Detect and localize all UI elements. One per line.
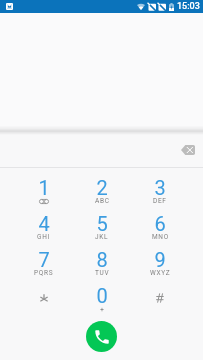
staticText: MNO bbox=[152, 233, 169, 241]
staticText: PQRS bbox=[34, 269, 54, 277]
staticText: + bbox=[100, 306, 104, 314]
staticText: ABC bbox=[95, 197, 110, 205]
staticText: 1 bbox=[38, 176, 50, 199]
button[interactable]: 8 bbox=[73, 240, 131, 276]
staticText: 3 bbox=[154, 176, 166, 199]
button[interactable]: 5 bbox=[73, 204, 131, 240]
staticText: 0 bbox=[96, 284, 108, 307]
button[interactable]: 9 bbox=[131, 240, 189, 276]
staticText: WXYZ bbox=[150, 269, 171, 277]
staticText: GHI bbox=[37, 233, 50, 241]
staticText: TUV bbox=[95, 269, 110, 277]
staticText: 9 bbox=[154, 248, 166, 271]
staticText: DEF bbox=[153, 197, 167, 205]
staticText: 2 bbox=[96, 176, 108, 199]
staticText: 5 bbox=[96, 212, 108, 235]
button[interactable]: 4 bbox=[14, 204, 73, 240]
button[interactable]: New mail bbox=[6, 3, 13, 10]
button[interactable]: 1 bbox=[14, 168, 73, 204]
button[interactable] bbox=[14, 276, 73, 312]
button[interactable]: 6 bbox=[131, 204, 189, 240]
button[interactable]: 7 bbox=[14, 240, 73, 276]
staticText: 8 bbox=[96, 248, 108, 271]
button[interactable]: Call bbox=[86, 321, 117, 352]
button[interactable]: 2 bbox=[73, 168, 131, 204]
staticText: JKL bbox=[95, 233, 109, 241]
staticText: 7 bbox=[38, 248, 50, 271]
button[interactable] bbox=[131, 276, 189, 312]
staticText: 15:03 bbox=[177, 1, 200, 12]
button[interactable]: Backspace bbox=[176, 138, 200, 162]
button[interactable]: 3 bbox=[131, 168, 189, 204]
staticText: 4 bbox=[38, 212, 50, 235]
button[interactable]: 0 bbox=[73, 276, 131, 312]
staticText: 6 bbox=[154, 212, 166, 235]
